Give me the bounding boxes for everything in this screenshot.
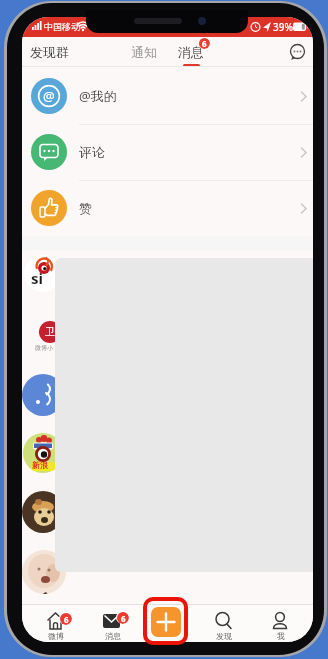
staticText: 消息	[105, 631, 121, 641]
staticText: 赞	[79, 200, 92, 216]
staticText: 发现	[216, 631, 232, 641]
staticText: 6	[121, 613, 126, 624]
staticText: 新浪	[32, 460, 48, 470]
button[interactable]: 发现群	[26, 37, 80, 67]
staticText: 我	[277, 631, 285, 641]
staticText: 39%	[273, 20, 293, 34]
staticText: 中国移动	[44, 21, 80, 32]
staticText: 微博小	[35, 344, 53, 352]
staticText: 评论	[79, 144, 105, 160]
button[interactable]: 通知	[126, 37, 162, 67]
staticText: 卫	[45, 325, 55, 338]
staticText: 通知	[131, 44, 157, 60]
staticText: si	[31, 268, 44, 288]
staticText: 6	[64, 614, 69, 625]
button[interactable]	[151, 607, 181, 637]
button[interactable]: @	[22, 68, 313, 124]
button[interactable]: 发现	[196, 604, 250, 642]
button[interactable]: 我	[253, 604, 307, 642]
button[interactable]	[288, 43, 307, 62]
button[interactable]: 消息	[85, 604, 139, 642]
button[interactable]: 评论	[22, 124, 313, 180]
staticText: 微博	[48, 631, 64, 641]
button[interactable]: 赞	[22, 180, 313, 236]
staticText: @	[43, 87, 55, 105]
staticText: @我的	[79, 87, 117, 105]
button[interactable]: 消息	[173, 37, 209, 67]
staticText: 发现群	[30, 44, 69, 60]
staticText: 6	[202, 38, 207, 49]
staticText: 消息	[178, 44, 204, 60]
button[interactable]: 微博	[28, 604, 82, 642]
